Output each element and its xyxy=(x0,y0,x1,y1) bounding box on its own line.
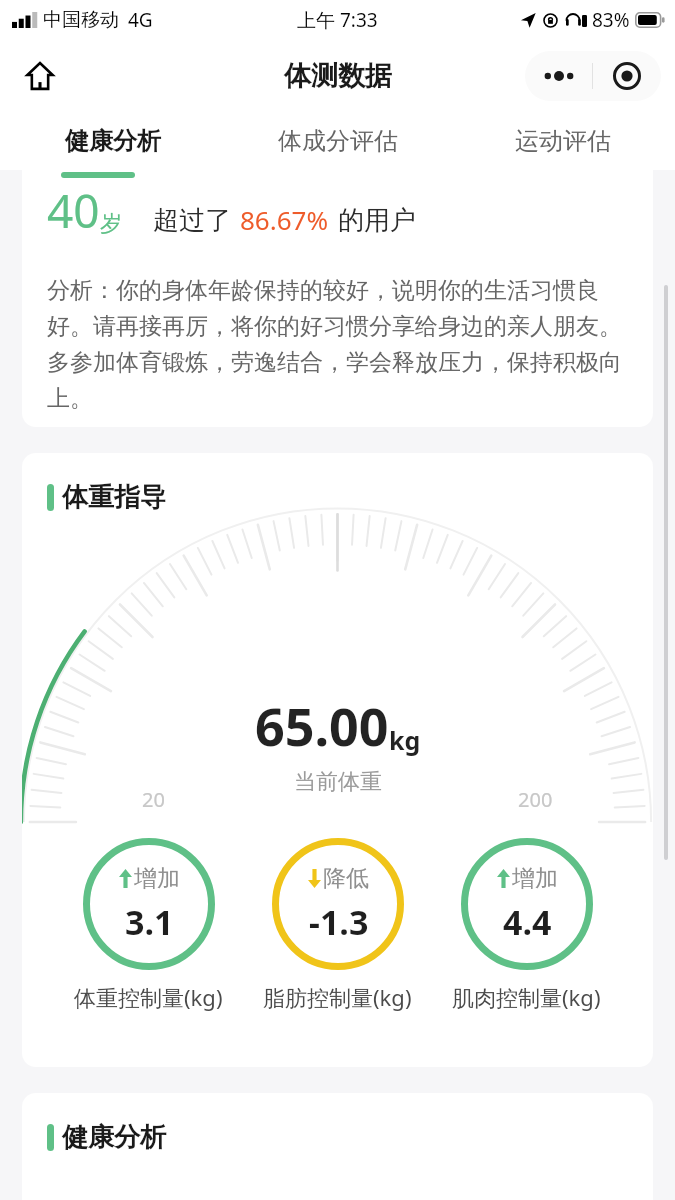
button[interactable]: 体成分评估 xyxy=(225,112,450,170)
staticText: 运动评估 xyxy=(515,126,611,156)
staticText: 的用户 xyxy=(338,204,416,237)
staticText: 超过了 xyxy=(153,204,231,237)
button[interactable]: Home xyxy=(16,52,64,100)
staticText: 健康分析 xyxy=(62,1121,166,1154)
staticText: kg xyxy=(389,723,421,757)
staticText: 86.67% xyxy=(240,202,329,237)
staticText: 体重指导 xyxy=(62,481,166,514)
button[interactable]: Menu and close xyxy=(525,51,661,101)
staticText: 岁 xyxy=(100,210,122,238)
staticText: 分析：你的身体年龄保持的较好，说明你的生活习惯良好。请再接再厉，将你的好习惯分享… xyxy=(47,276,628,413)
staticText: -1.3 xyxy=(309,899,369,945)
staticText: 肌肉控制量(kg) xyxy=(452,982,601,1012)
staticText: 降低 xyxy=(323,864,369,893)
staticText: 当前体重 xyxy=(294,768,382,796)
staticText: 体测数据 xyxy=(284,59,392,93)
staticText: 健康分析 xyxy=(65,126,161,156)
staticText: 增加 xyxy=(134,864,180,893)
staticText: 体成分评估 xyxy=(278,126,398,156)
button[interactable]: 健康分析 xyxy=(0,112,225,170)
staticText: 4.4 xyxy=(503,899,552,945)
staticText: 中国移动 xyxy=(43,8,119,32)
button[interactable]: 增加 xyxy=(83,838,215,970)
staticText: 83% xyxy=(592,7,630,33)
staticText: 脂肪控制量(kg) xyxy=(263,982,412,1012)
staticText: 40 xyxy=(47,179,100,242)
staticText: 3.1 xyxy=(125,899,174,945)
staticText: 增加 xyxy=(512,864,558,893)
staticText: 65.00 xyxy=(255,690,389,761)
button[interactable]: 增加 xyxy=(461,838,593,970)
staticText: 上午 7:33 xyxy=(297,7,378,33)
button[interactable]: 降低 xyxy=(272,838,404,970)
button[interactable]: 运动评估 xyxy=(450,112,675,170)
staticText: 体重控制量(kg) xyxy=(74,982,223,1012)
staticText: 20 xyxy=(142,786,165,813)
staticText: 4G xyxy=(128,7,153,33)
staticText: 200 xyxy=(518,786,553,813)
